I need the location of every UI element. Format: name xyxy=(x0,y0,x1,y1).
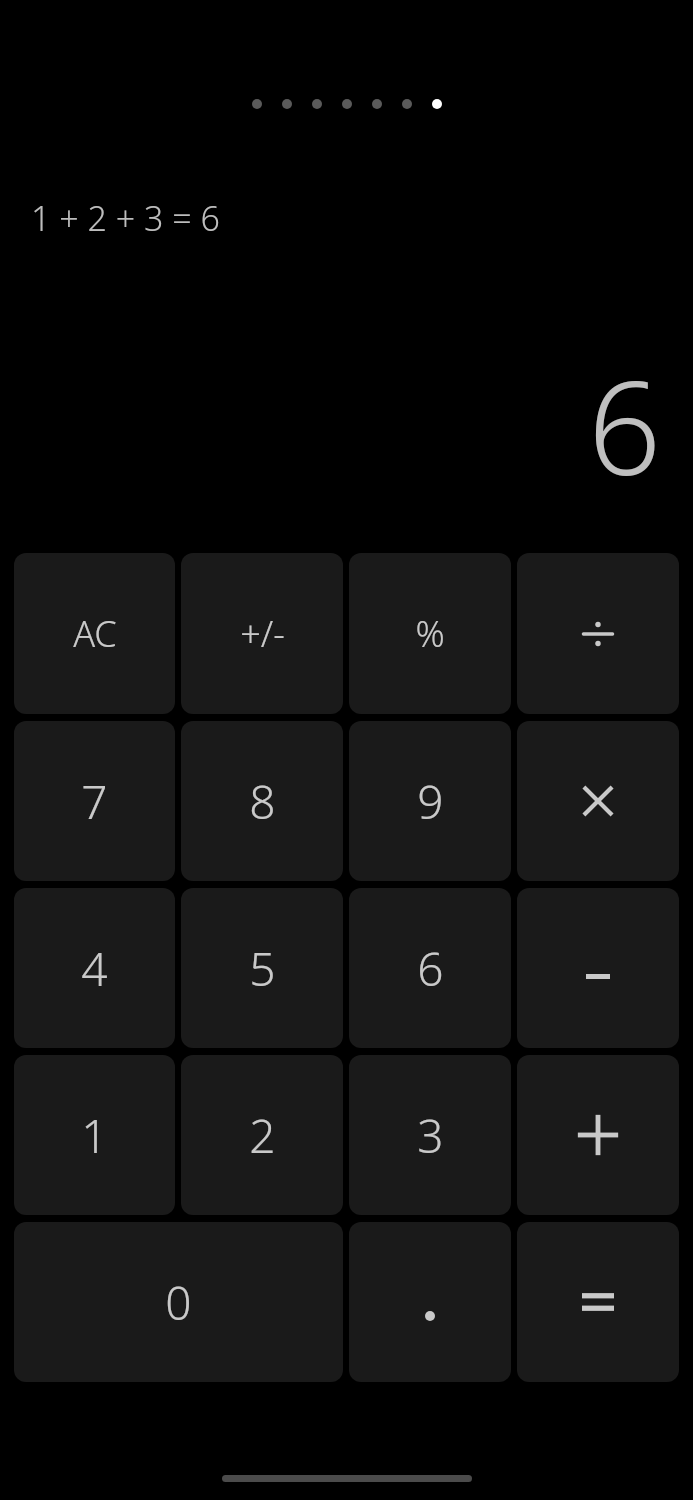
staticText: 8 xyxy=(249,770,276,833)
button[interactable]: Decimal point xyxy=(349,1222,511,1382)
button[interactable]: Plus xyxy=(517,1055,679,1215)
button[interactable]: 7 xyxy=(14,721,175,881)
button[interactable]: Divide xyxy=(517,553,679,714)
button[interactable]: Multiply xyxy=(517,721,679,881)
staticText: 6 xyxy=(587,338,661,512)
staticText: 7 xyxy=(81,770,108,833)
staticText: AC xyxy=(73,609,117,658)
staticText: 3 xyxy=(417,1104,444,1167)
button[interactable]: % xyxy=(349,553,511,714)
staticText: 1 xyxy=(81,1104,108,1167)
staticText: 6 xyxy=(417,937,444,1000)
staticText: 4 xyxy=(81,937,108,1000)
button[interactable]: AC xyxy=(14,553,175,714)
button[interactable]: +/- xyxy=(181,553,343,714)
button[interactable]: 0 xyxy=(14,1222,343,1382)
button[interactable]: 5 xyxy=(181,888,343,1048)
button[interactable]: 1 xyxy=(14,1055,175,1215)
button[interactable]: 6 xyxy=(349,888,511,1048)
button[interactable]: 3 xyxy=(349,1055,511,1215)
staticText: +/- xyxy=(240,609,285,658)
staticText: 5 xyxy=(249,937,276,1000)
staticText: % xyxy=(415,609,445,658)
staticText: 0 xyxy=(165,1271,192,1334)
button[interactable]: 4 xyxy=(14,888,175,1048)
staticText: 2 xyxy=(249,1104,276,1167)
button[interactable]: 8 xyxy=(181,721,343,881)
staticText: 9 xyxy=(417,770,444,833)
button[interactable]: Equals xyxy=(517,1222,679,1382)
button[interactable]: 2 xyxy=(181,1055,343,1215)
button[interactable]: 9 xyxy=(349,721,511,881)
staticText: 1 + 2 + 3 = 6 xyxy=(31,195,220,241)
button[interactable]: Minus xyxy=(517,888,679,1048)
